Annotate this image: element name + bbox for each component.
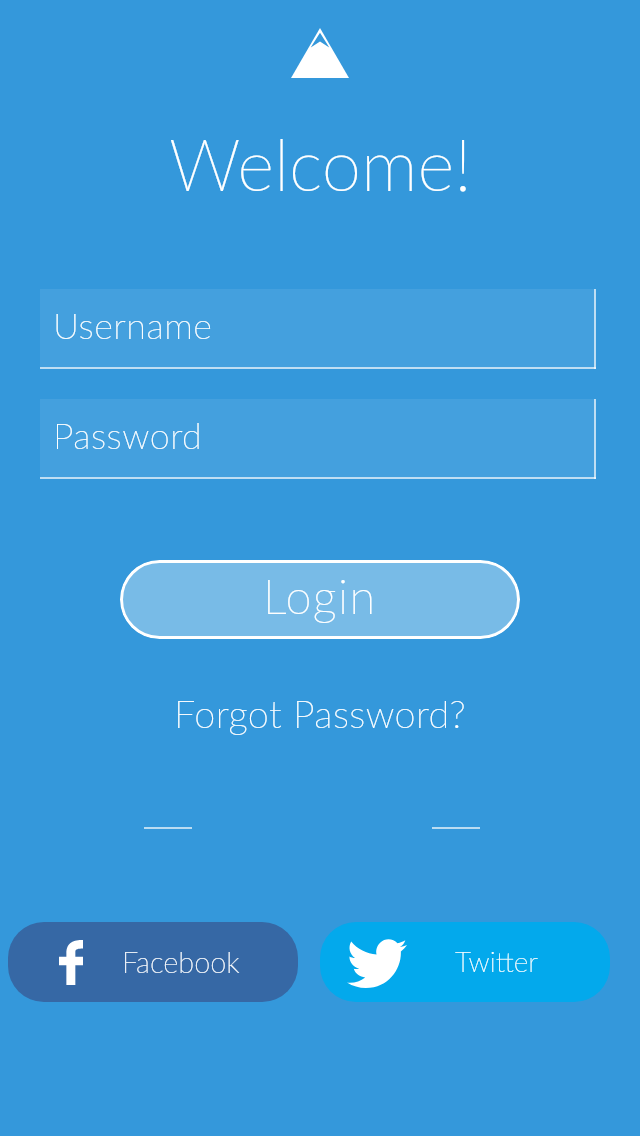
staticText: Welcome! [169, 121, 472, 206]
staticText: Login [263, 568, 377, 624]
button[interactable]: Forgot Password? [164, 684, 477, 742]
button[interactable]: Username [40, 289, 596, 369]
button[interactable]: Facebook [8, 922, 298, 1002]
staticText: Password [53, 413, 203, 456]
button[interactable]: Login [120, 560, 520, 639]
staticText: Username [53, 303, 213, 346]
other: Logo [291, 28, 349, 78]
button[interactable]: Twitter [320, 922, 610, 1002]
staticText: Twitter [455, 944, 538, 978]
button[interactable]: Password [40, 399, 596, 479]
staticText: Forgot Password? [174, 690, 467, 736]
staticText: Facebook [122, 944, 240, 979]
